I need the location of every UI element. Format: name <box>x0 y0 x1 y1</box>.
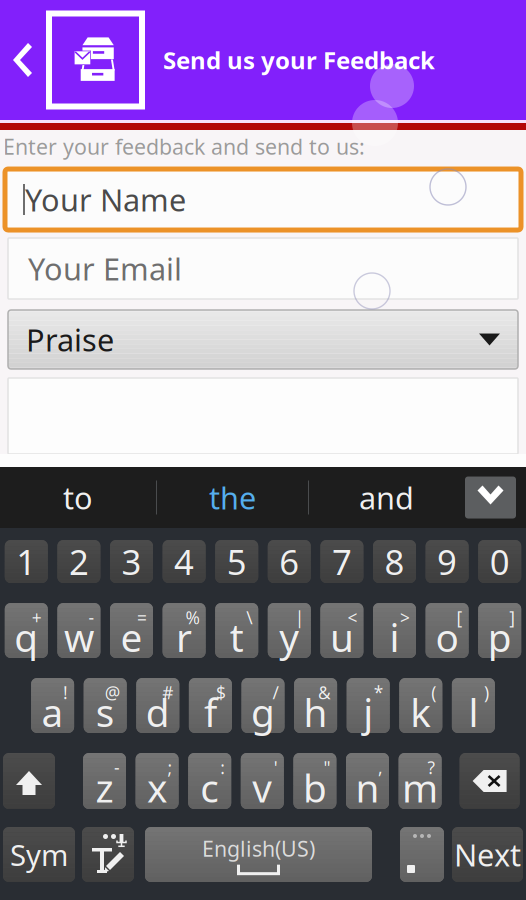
button[interactable] <box>268 540 311 583</box>
staticText: 1 <box>16 538 36 584</box>
button[interactable]: and <box>309 467 464 528</box>
button[interactable]: @ <box>84 678 127 733</box>
staticText: Sym <box>10 835 68 874</box>
button[interactable]: Period <box>400 827 444 882</box>
button[interactable] <box>478 540 521 583</box>
staticText: o <box>436 611 459 663</box>
staticText: d <box>146 686 170 738</box>
button[interactable]: Space <box>145 827 372 882</box>
button[interactable]: Shift <box>3 753 55 809</box>
staticText: ] <box>509 606 515 629</box>
button[interactable]: ? <box>399 753 442 809</box>
button[interactable]: < <box>320 603 363 658</box>
staticText: , <box>378 756 383 779</box>
staticText: 5 <box>227 538 247 584</box>
button[interactable]: > <box>373 603 416 658</box>
button[interactable]: ; <box>136 753 179 809</box>
button[interactable] <box>110 540 153 583</box>
staticText: v <box>252 762 272 813</box>
button[interactable]: ! <box>31 678 74 733</box>
button[interactable]: , <box>346 753 389 809</box>
button[interactable] <box>373 540 416 583</box>
button[interactable]: the <box>157 467 308 528</box>
staticText: u <box>330 611 354 663</box>
staticText: [ <box>457 606 463 629</box>
button[interactable]: " <box>293 753 336 809</box>
staticText: Your Name <box>25 179 186 220</box>
staticText: q <box>14 611 38 663</box>
staticText: 2 <box>69 538 89 584</box>
staticText: p <box>488 611 512 663</box>
staticText: > <box>400 606 410 629</box>
staticText: Next <box>454 834 521 875</box>
staticText: ! <box>63 681 68 704</box>
button[interactable]: | <box>268 603 311 658</box>
button[interactable]: [ <box>426 603 469 658</box>
staticText: y <box>279 611 299 663</box>
staticText: - <box>114 756 120 779</box>
staticText: + <box>32 606 42 629</box>
staticText: 4 <box>174 538 194 584</box>
button[interactable]: Hide keyboard <box>465 476 516 518</box>
button[interactable] <box>5 540 48 583</box>
staticText: the <box>209 477 256 518</box>
button[interactable] <box>426 540 469 583</box>
button[interactable]: \ <box>215 603 258 658</box>
staticText: 7 <box>332 538 352 584</box>
button[interactable]: Voice input <box>82 827 134 882</box>
staticText: h <box>304 686 328 738</box>
button[interactable] <box>320 540 363 583</box>
button[interactable]: & <box>294 678 337 733</box>
staticText: r <box>176 611 192 663</box>
button[interactable] <box>57 540 100 583</box>
button[interactable]: Delete <box>460 753 520 809</box>
staticText: k <box>410 686 431 738</box>
button[interactable]: ' <box>241 753 284 809</box>
staticText: c <box>200 762 219 813</box>
staticText: b <box>303 762 327 813</box>
button[interactable] <box>0 369 526 454</box>
staticText: Praise <box>26 319 114 360</box>
staticText: Your Email <box>28 248 182 289</box>
staticText: ; <box>168 756 173 779</box>
staticText: \ <box>246 606 252 629</box>
button[interactable] <box>3 827 75 882</box>
staticText: n <box>355 762 379 813</box>
staticText: ' <box>274 756 278 779</box>
staticText: i <box>389 611 399 663</box>
button[interactable] <box>215 540 258 583</box>
button[interactable]: ] <box>478 603 521 658</box>
staticText: f <box>204 686 217 738</box>
button[interactable]: = <box>110 603 153 658</box>
staticText: s <box>96 686 115 738</box>
button[interactable]: - <box>83 753 126 809</box>
button[interactable]: to <box>0 467 156 528</box>
staticText: & <box>318 681 331 704</box>
staticText: = <box>137 606 147 629</box>
staticText: 8 <box>384 538 404 584</box>
button[interactable]: - <box>57 603 100 658</box>
button[interactable]: Your Email <box>0 230 526 299</box>
staticText: ( <box>431 681 436 704</box>
button[interactable]: : <box>188 753 231 809</box>
button[interactable]: ( <box>399 678 442 733</box>
button[interactable]: $ <box>189 678 232 733</box>
staticText: English(US) <box>202 834 315 863</box>
button[interactable]: + <box>5 603 48 658</box>
staticText: # <box>162 681 173 704</box>
staticText: and <box>359 477 414 518</box>
button[interactable]: % <box>163 603 206 658</box>
button[interactable]: ) <box>452 678 495 733</box>
staticText: | <box>295 606 305 629</box>
staticText: : <box>220 756 225 779</box>
staticText: % <box>186 606 200 629</box>
button[interactable]: * <box>347 678 390 733</box>
button[interactable] <box>452 827 523 882</box>
staticText: " <box>323 756 330 779</box>
button[interactable]: / <box>241 678 284 733</box>
button[interactable]: Praise <box>0 299 526 369</box>
button[interactable]: Back <box>0 0 46 120</box>
button[interactable]: # <box>136 678 179 733</box>
button[interactable]: Your Name <box>0 169 526 230</box>
button[interactable] <box>163 540 206 583</box>
